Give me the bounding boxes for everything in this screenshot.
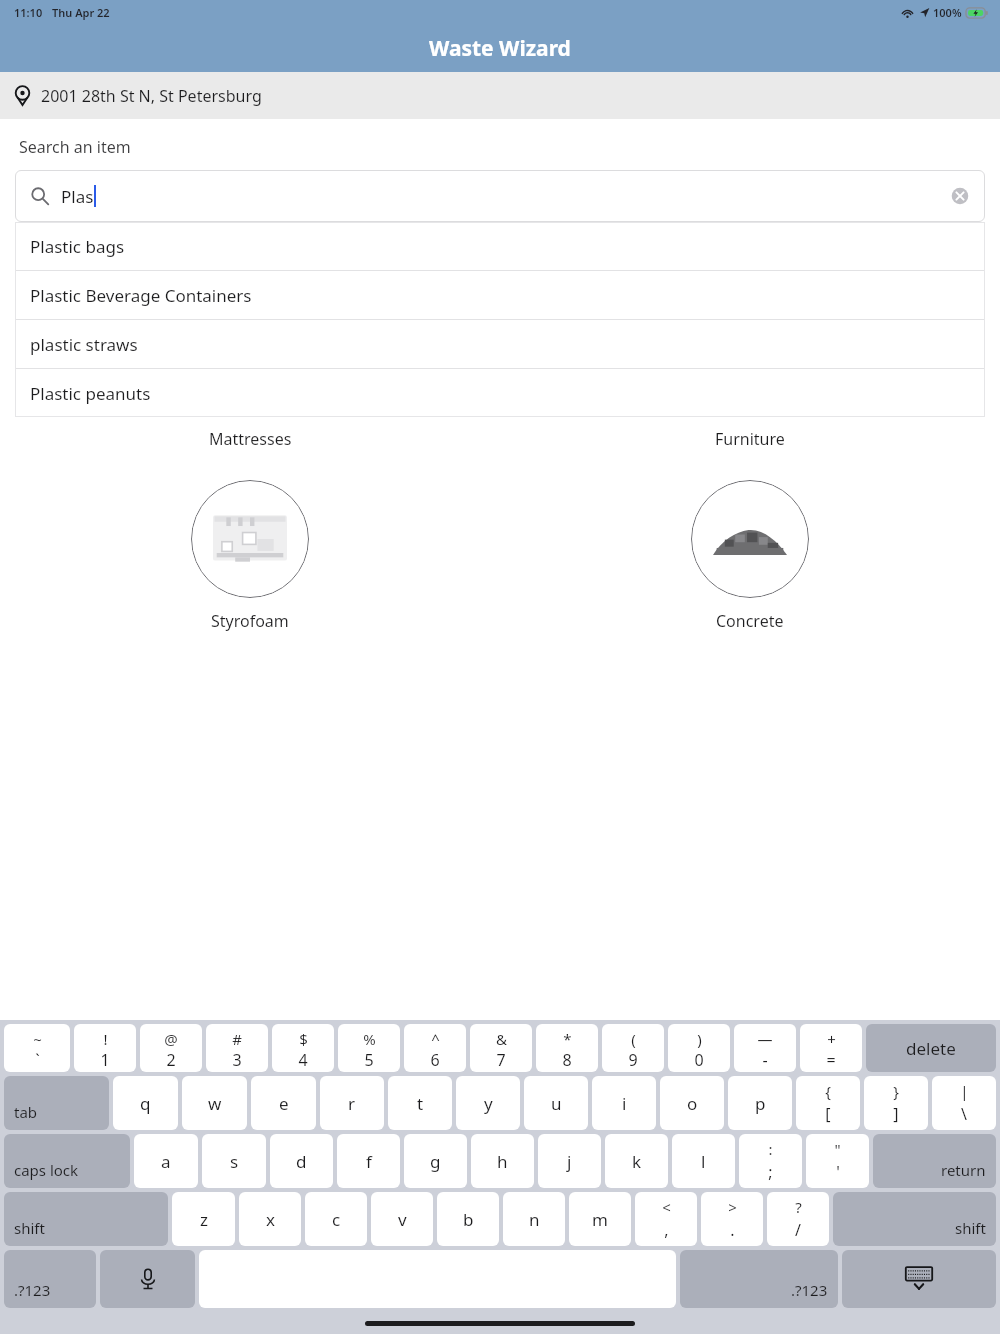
button[interactable]: q: [113, 1076, 178, 1130]
button[interactable]: Plas: [15, 170, 985, 222]
button[interactable]: Concrete: [687, 476, 813, 636]
button[interactable]: shift: [833, 1192, 996, 1246]
button[interactable]: s: [202, 1134, 266, 1188]
staticText: (: [631, 1029, 636, 1049]
button[interactable]: >: [701, 1192, 763, 1246]
button[interactable]: return: [873, 1134, 996, 1188]
button[interactable]: Mattresses: [187, 294, 313, 454]
button[interactable]: <: [635, 1192, 697, 1246]
button[interactable]: ": [806, 1134, 869, 1188]
button[interactable]: (: [602, 1024, 664, 1072]
button[interactable]: +: [800, 1024, 862, 1072]
button[interactable]: #: [206, 1024, 268, 1072]
button[interactable]: .?123: [4, 1250, 96, 1308]
button[interactable]: b: [437, 1192, 499, 1246]
button[interactable]: i: [592, 1076, 656, 1130]
button[interactable]: p: [728, 1076, 792, 1130]
staticText: u: [551, 1092, 562, 1115]
staticText: Plastic peanuts: [30, 382, 151, 405]
button[interactable]: v: [371, 1192, 433, 1246]
button[interactable]: d: [270, 1134, 333, 1188]
staticText: +: [827, 1029, 836, 1049]
button[interactable]: a: [134, 1134, 198, 1188]
button[interactable]: z: [172, 1192, 235, 1246]
staticText: l: [701, 1150, 706, 1173]
button[interactable]: f: [337, 1134, 400, 1188]
button[interactable]: $: [272, 1024, 334, 1072]
button[interactable]: ^: [404, 1024, 466, 1072]
staticText: Plastic Beverage Containers: [30, 284, 252, 307]
button[interactable]: w: [182, 1076, 247, 1130]
button[interactable]: Plastic bags: [15, 222, 985, 270]
button[interactable]: Dictate: [100, 1250, 195, 1308]
staticText: s: [230, 1150, 239, 1173]
button[interactable]: %: [338, 1024, 400, 1072]
staticText: Plastic bags: [30, 235, 125, 258]
button[interactable]: l: [672, 1134, 735, 1188]
button[interactable]: shift: [4, 1192, 168, 1246]
staticText: !: [103, 1029, 108, 1049]
staticText: n: [529, 1208, 540, 1231]
button[interactable]: Furniture: [687, 294, 813, 454]
staticText: Waste Wizard: [429, 34, 571, 63]
button[interactable]: m: [569, 1192, 631, 1246]
button[interactable]: {: [796, 1076, 860, 1130]
staticText: plastic straws: [30, 333, 138, 356]
button[interactable]: x: [239, 1192, 301, 1246]
button[interactable]: n: [503, 1192, 565, 1246]
button[interactable]: ): [668, 1024, 730, 1072]
button[interactable]: Clear text: [951, 187, 969, 205]
button[interactable]: u: [524, 1076, 588, 1130]
button[interactable]: ~: [4, 1024, 70, 1072]
button[interactable]: k: [605, 1134, 668, 1188]
staticText: 11:10: [14, 5, 43, 20]
staticText: Plas: [61, 185, 94, 208]
staticText: [: [825, 1103, 831, 1125]
staticText: ]: [893, 1103, 899, 1125]
button[interactable]: Plastic peanuts: [15, 369, 985, 417]
button[interactable]: delete: [866, 1024, 996, 1072]
button[interactable]: o: [660, 1076, 724, 1130]
staticText: a: [161, 1150, 171, 1173]
staticText: e: [279, 1092, 289, 1115]
staticText: tab: [14, 1102, 38, 1122]
staticText: &: [496, 1029, 507, 1049]
button[interactable]: :: [739, 1134, 802, 1188]
button[interactable]: j: [538, 1134, 601, 1188]
button[interactable]: tab: [4, 1076, 109, 1130]
button[interactable]: plastic straws: [15, 320, 985, 368]
button[interactable]: ?: [767, 1192, 829, 1246]
button[interactable]: y: [456, 1076, 520, 1130]
staticText: Concrete: [716, 610, 784, 632]
button[interactable]: h: [471, 1134, 534, 1188]
button[interactable]: }: [864, 1076, 928, 1130]
button[interactable]: g: [404, 1134, 467, 1188]
button[interactable]: t: [388, 1076, 452, 1130]
button[interactable]: 2001 28th St N, St Petersburg: [0, 72, 1000, 119]
staticText: i: [622, 1092, 627, 1115]
button[interactable]: &: [470, 1024, 532, 1072]
staticText: Mattresses: [209, 428, 292, 450]
staticText: %: [363, 1029, 376, 1049]
button[interactable]: Styrofoam: [187, 476, 313, 636]
staticText: 1: [100, 1049, 110, 1067]
staticText: y: [484, 1092, 493, 1115]
button[interactable]: @: [140, 1024, 202, 1072]
button[interactable]: caps lock: [4, 1134, 130, 1188]
staticText: ?: [795, 1197, 802, 1217]
staticText: g: [430, 1150, 441, 1173]
staticText: o: [687, 1092, 698, 1115]
button[interactable]: Plastic Beverage Containers: [15, 271, 985, 319]
button[interactable]: !: [74, 1024, 136, 1072]
button[interactable]: *: [536, 1024, 598, 1072]
staticText: Search an item: [19, 136, 131, 158]
button[interactable]: Hide keyboard: [842, 1250, 996, 1308]
staticText: 8: [562, 1049, 572, 1067]
button[interactable]: —: [734, 1024, 796, 1072]
button[interactable]: c: [305, 1192, 367, 1246]
button[interactable]: |: [932, 1076, 996, 1130]
button[interactable]: e: [251, 1076, 316, 1130]
button[interactable]: .?123: [680, 1250, 838, 1308]
button[interactable]: r: [320, 1076, 384, 1130]
